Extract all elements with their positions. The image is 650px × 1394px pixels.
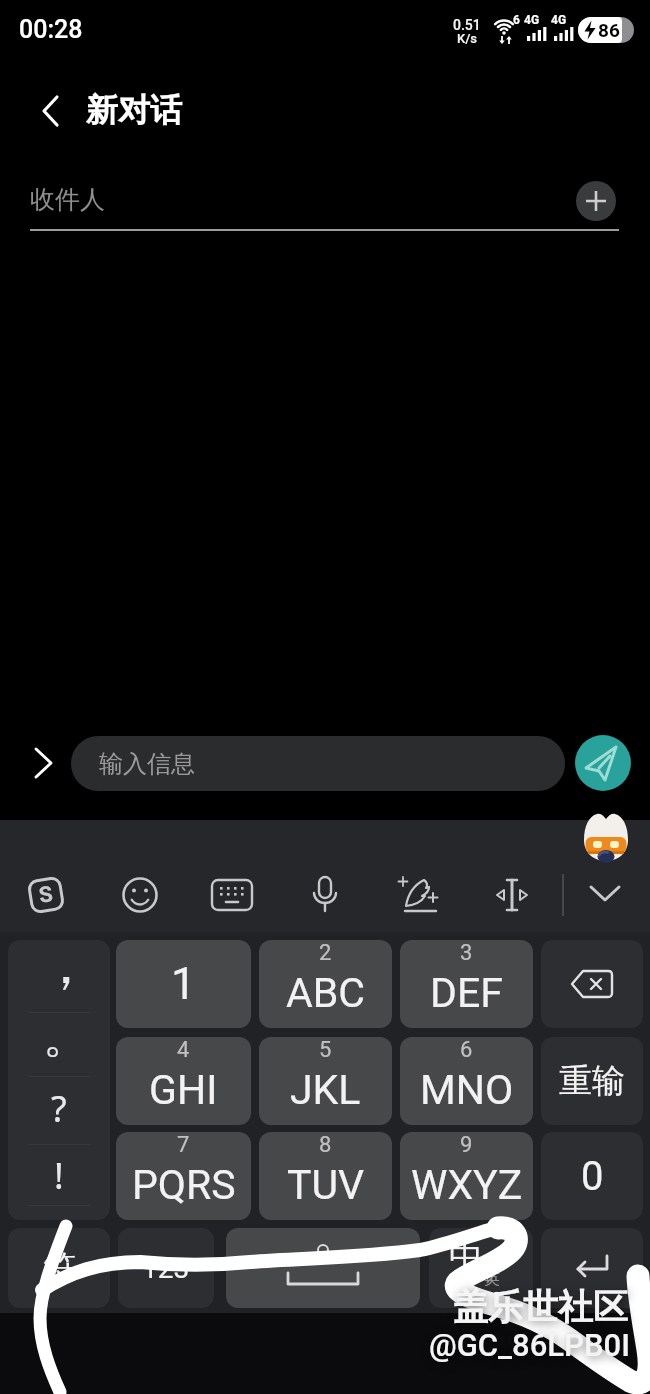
button[interactable] bbox=[309, 875, 341, 915]
button[interactable]: 8 bbox=[259, 1132, 392, 1220]
staticText: ! bbox=[54, 1151, 64, 1200]
staticText: ， bbox=[40, 940, 92, 999]
staticText: WXYZ bbox=[411, 1161, 523, 1209]
staticText: K/s bbox=[457, 31, 478, 46]
staticText: 新对话 bbox=[86, 90, 182, 130]
staticText: 4G bbox=[551, 13, 567, 27]
staticText: 收件人 bbox=[30, 184, 105, 215]
staticText: 4 bbox=[177, 1037, 190, 1063]
button[interactable]: 输入信息 bbox=[71, 736, 565, 791]
staticText: ? bbox=[51, 1084, 67, 1133]
staticText: 6 bbox=[460, 1037, 473, 1063]
staticText: 英 bbox=[484, 1269, 500, 1289]
staticText: DEF bbox=[430, 969, 503, 1017]
button[interactable] bbox=[226, 1228, 420, 1308]
button[interactable]: 符 bbox=[8, 1228, 110, 1308]
button[interactable] bbox=[541, 1228, 643, 1308]
button[interactable] bbox=[576, 181, 616, 221]
button[interactable] bbox=[575, 735, 631, 791]
staticText: 2 bbox=[319, 940, 332, 966]
button[interactable] bbox=[398, 873, 442, 917]
button[interactable] bbox=[32, 90, 72, 134]
staticText: 9 bbox=[460, 1132, 473, 1158]
staticText: 123 bbox=[142, 1252, 190, 1285]
staticText: @GC_86LPB0I bbox=[429, 1327, 630, 1363]
staticText: 盖乐世社区 bbox=[453, 1285, 628, 1329]
staticText: 5 bbox=[319, 1037, 332, 1063]
staticText: PQRS bbox=[132, 1161, 236, 1209]
staticText: 3 bbox=[460, 940, 473, 966]
button[interactable] bbox=[587, 883, 623, 907]
button[interactable]: 0 bbox=[541, 1132, 643, 1220]
button[interactable]: ， bbox=[8, 940, 110, 1220]
staticText: JKL bbox=[290, 1066, 361, 1114]
button[interactable]: 3 bbox=[400, 940, 533, 1028]
staticText: 7 bbox=[177, 1132, 190, 1158]
button[interactable]: 重输 bbox=[541, 1037, 643, 1125]
staticText: 6 bbox=[513, 13, 520, 27]
button[interactable]: 4 bbox=[116, 1037, 251, 1125]
staticText: 8 bbox=[319, 1132, 332, 1158]
button[interactable]: 123 bbox=[118, 1228, 214, 1308]
button[interactable] bbox=[210, 877, 254, 913]
button[interactable] bbox=[492, 877, 532, 913]
staticText: 86 bbox=[598, 19, 620, 41]
button[interactable] bbox=[121, 876, 159, 914]
staticText: 中 bbox=[449, 1235, 483, 1278]
staticText: 符 bbox=[43, 1247, 76, 1289]
button[interactable]: 2 bbox=[259, 940, 392, 1028]
staticText: 4G bbox=[524, 13, 540, 27]
button[interactable]: S bbox=[26, 875, 65, 914]
button[interactable]: 7 bbox=[116, 1132, 251, 1220]
button[interactable]: 收件人 bbox=[24, 168, 564, 230]
staticText: ABC bbox=[286, 969, 365, 1017]
staticText: GHI bbox=[149, 1066, 218, 1114]
staticText: 。 bbox=[43, 1008, 89, 1066]
button[interactable] bbox=[541, 940, 643, 1028]
staticText: 0.51 bbox=[453, 17, 481, 33]
staticText: 输入信息 bbox=[99, 749, 195, 779]
button[interactable]: 9 bbox=[400, 1132, 533, 1220]
staticText: MNO bbox=[420, 1066, 514, 1114]
button[interactable]: 中 bbox=[429, 1228, 533, 1308]
staticText: 重输 bbox=[559, 1060, 625, 1102]
button[interactable] bbox=[28, 745, 58, 781]
button[interactable]: 1 bbox=[116, 940, 251, 1028]
staticText: TUV bbox=[287, 1161, 365, 1209]
button[interactable]: 5 bbox=[259, 1037, 392, 1125]
staticText: S bbox=[37, 881, 55, 909]
staticText: 0 bbox=[581, 1153, 604, 1200]
button[interactable]: 6 bbox=[400, 1037, 533, 1125]
staticText: 1 bbox=[171, 958, 196, 1010]
staticText: 00:28 bbox=[19, 15, 83, 44]
